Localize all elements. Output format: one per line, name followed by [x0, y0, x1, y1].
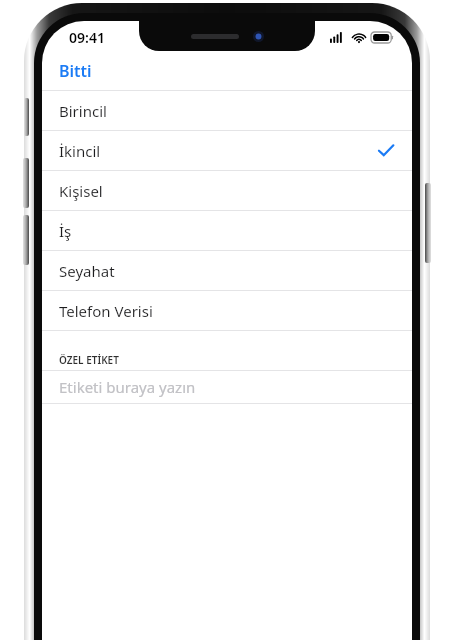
button[interactable]: Etiketi buraya yazın: [42, 371, 412, 403]
button[interactable]: Bitti: [42, 51, 412, 90]
staticText: ÖZEL ETİKET: [59, 353, 119, 367]
staticText: Telefon Verisi: [59, 301, 153, 321]
staticText: Birincil: [59, 101, 107, 121]
button[interactable]: Kişisel: [42, 171, 412, 211]
button[interactable]: Birincil: [42, 91, 412, 131]
staticText: 09:41: [69, 28, 105, 47]
button[interactable]: Telefon Verisi: [42, 291, 412, 331]
button[interactable]: İş: [42, 211, 412, 251]
staticText: İkincil: [59, 141, 101, 161]
other: Seçili: [378, 144, 394, 157]
staticText: İş: [59, 221, 72, 241]
staticText: Etiketi buraya yazın: [59, 377, 196, 397]
button[interactable]: İkincil: [42, 131, 412, 171]
staticText: Kişisel: [59, 181, 103, 201]
staticText: Bitti: [59, 60, 92, 82]
staticText: Seyahat: [59, 261, 115, 281]
button[interactable]: Seyahat: [42, 251, 412, 291]
